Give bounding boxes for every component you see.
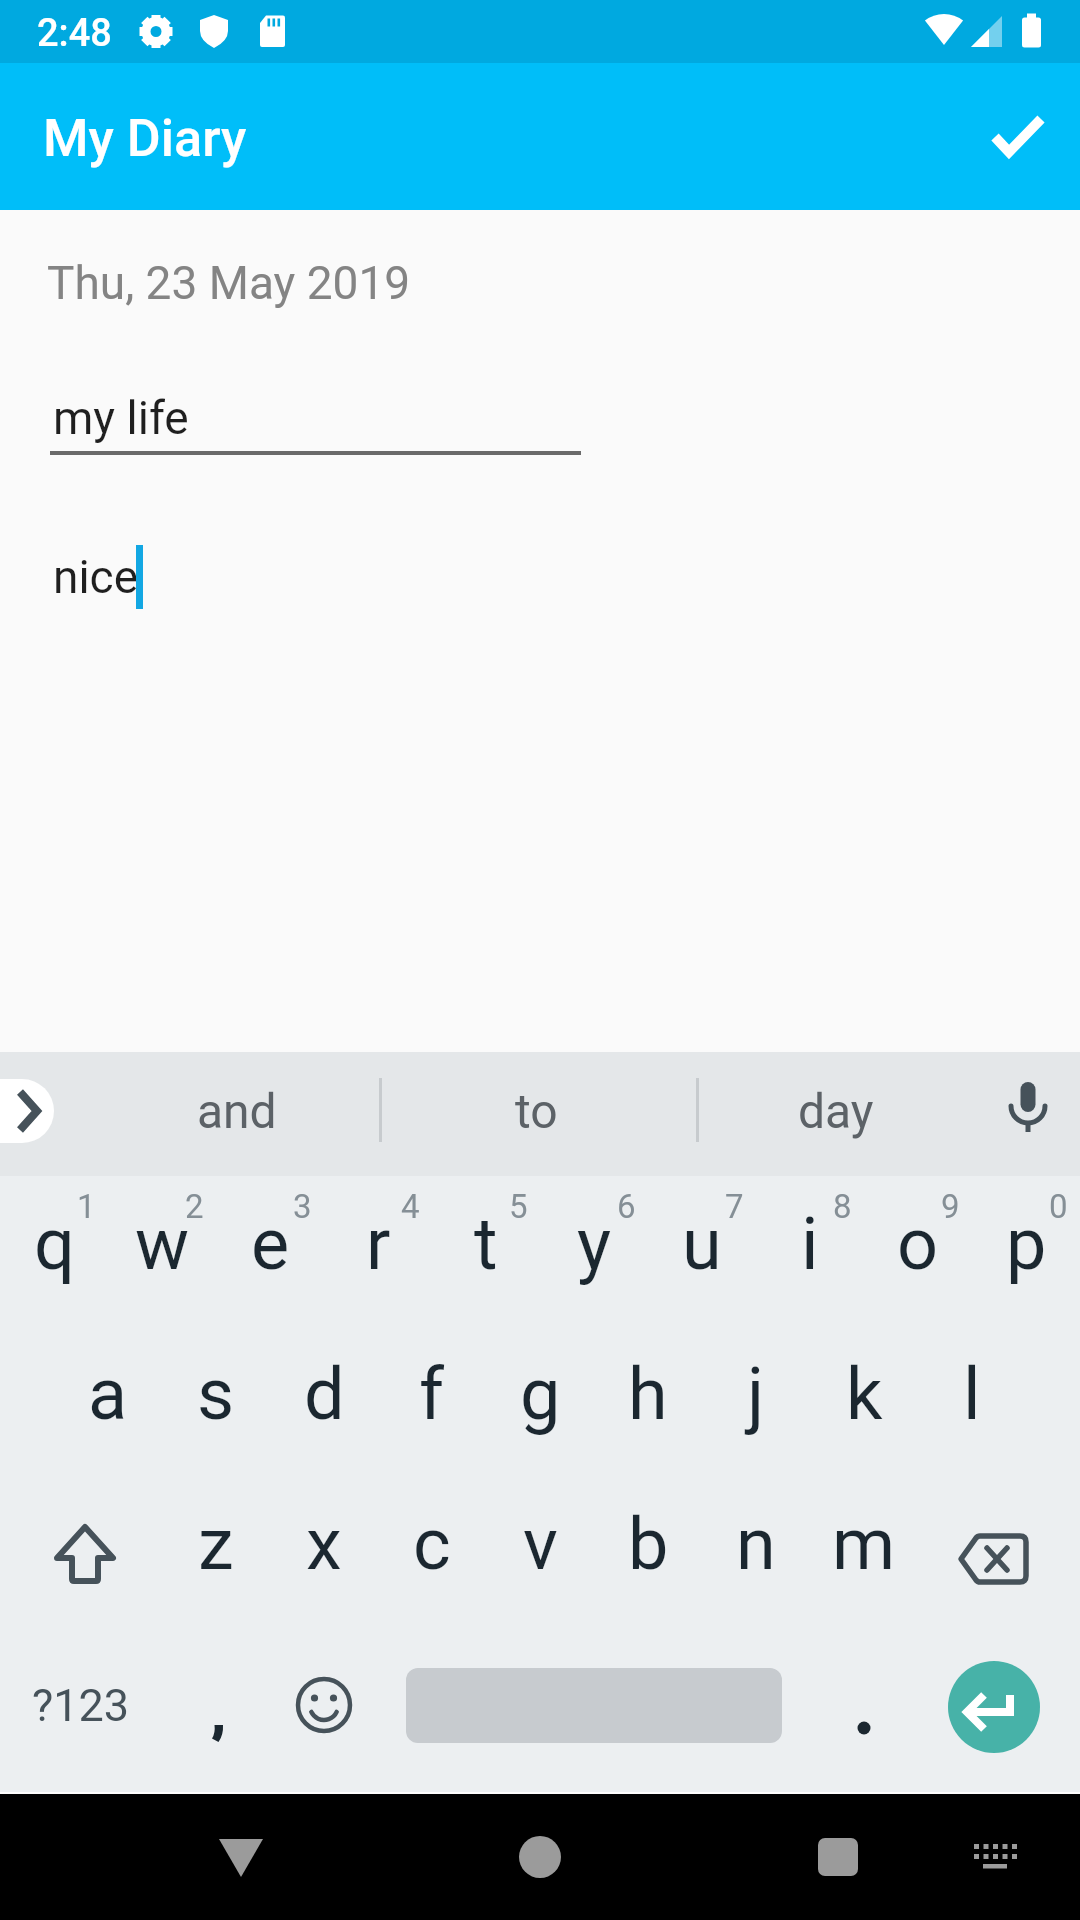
staticText: to xyxy=(515,1083,558,1139)
staticText: y xyxy=(577,1202,612,1286)
staticText: h xyxy=(628,1352,668,1436)
button[interactable]: o xyxy=(864,1180,972,1330)
staticText: e xyxy=(251,1202,290,1286)
button[interactable]: l xyxy=(918,1330,1026,1480)
staticText: Thu, 23 May 2019 xyxy=(47,256,411,310)
staticText: q xyxy=(34,1202,75,1286)
button[interactable]: q xyxy=(0,1180,108,1330)
button[interactable]: m xyxy=(810,1480,918,1630)
staticText: My Diary xyxy=(43,108,247,169)
button[interactable]: u xyxy=(648,1180,756,1330)
staticText: 2:48 xyxy=(37,11,112,56)
staticText: b xyxy=(628,1502,669,1586)
staticText: u xyxy=(682,1202,722,1286)
staticText: 6 xyxy=(617,1187,636,1226)
button[interactable]: z xyxy=(162,1480,270,1630)
button[interactable] xyxy=(996,1078,1060,1142)
button[interactable] xyxy=(918,1630,1080,1780)
button[interactable]: and xyxy=(92,1079,382,1143)
button[interactable] xyxy=(0,1079,54,1143)
staticText: f xyxy=(419,1352,445,1436)
staticText: o xyxy=(897,1202,939,1286)
staticText: w xyxy=(135,1202,190,1286)
staticText: r xyxy=(366,1202,391,1286)
staticText: m xyxy=(832,1502,896,1586)
button[interactable] xyxy=(980,101,1050,171)
staticText: c xyxy=(413,1502,451,1586)
button[interactable]: j xyxy=(702,1330,810,1480)
button[interactable]: d xyxy=(270,1330,378,1480)
staticText: 3 xyxy=(293,1187,312,1226)
button[interactable] xyxy=(378,1630,810,1780)
staticText: day xyxy=(798,1083,874,1139)
button[interactable] xyxy=(955,1819,1035,1895)
button[interactable]: to xyxy=(386,1079,686,1143)
staticText: j xyxy=(747,1352,765,1436)
button[interactable] xyxy=(810,1630,918,1780)
button[interactable]: h xyxy=(594,1330,702,1480)
button[interactable]: a xyxy=(54,1330,162,1480)
button[interactable]: y xyxy=(540,1180,648,1330)
staticText: 2 xyxy=(185,1187,204,1226)
button[interactable]: f xyxy=(378,1330,486,1480)
staticText: d xyxy=(304,1352,345,1436)
staticText: i xyxy=(801,1202,819,1286)
button[interactable] xyxy=(178,1796,304,1918)
button[interactable]: i xyxy=(756,1180,864,1330)
staticText: my life xyxy=(53,391,189,445)
button[interactable] xyxy=(0,1480,162,1630)
button[interactable]: n xyxy=(702,1480,810,1630)
staticText: a xyxy=(88,1352,128,1436)
staticText: p xyxy=(1006,1202,1047,1286)
button[interactable]: nice xyxy=(50,540,550,625)
staticText: l xyxy=(963,1352,981,1436)
staticText: and xyxy=(197,1083,277,1139)
staticText: g xyxy=(520,1352,561,1436)
staticText: nice xyxy=(53,550,139,604)
staticText: 1 xyxy=(77,1187,96,1226)
staticText: k xyxy=(846,1352,883,1436)
staticText: v xyxy=(523,1502,558,1586)
button[interactable]: e xyxy=(216,1180,324,1330)
button[interactable]: p xyxy=(972,1180,1080,1330)
button[interactable]: b xyxy=(594,1480,702,1630)
staticText: 9 xyxy=(941,1187,960,1226)
button[interactable]: ?123 xyxy=(0,1630,162,1780)
button[interactable] xyxy=(477,1796,603,1918)
staticText: 0 xyxy=(1049,1187,1068,1226)
button[interactable] xyxy=(775,1796,901,1918)
staticText: s xyxy=(197,1352,235,1436)
button[interactable] xyxy=(918,1480,1080,1630)
button[interactable]: v xyxy=(486,1480,594,1630)
staticText: x xyxy=(306,1502,342,1586)
button[interactable]: k xyxy=(810,1330,918,1480)
staticText: t xyxy=(474,1202,498,1286)
button[interactable]: my life xyxy=(50,381,581,455)
button[interactable] xyxy=(162,1630,270,1780)
button[interactable]: s xyxy=(162,1330,270,1480)
staticText: n xyxy=(736,1502,776,1586)
button[interactable]: r xyxy=(324,1180,432,1330)
staticText: 7 xyxy=(725,1187,744,1226)
button[interactable]: day xyxy=(686,1079,986,1143)
staticText: 5 xyxy=(509,1187,528,1226)
button[interactable]: w xyxy=(108,1180,216,1330)
staticText: 4 xyxy=(401,1187,420,1226)
button[interactable] xyxy=(270,1630,378,1780)
button[interactable]: c xyxy=(378,1480,486,1630)
staticText: z xyxy=(198,1502,234,1586)
staticText: 8 xyxy=(833,1187,852,1226)
button[interactable]: g xyxy=(486,1330,594,1480)
button[interactable]: t xyxy=(432,1180,540,1330)
staticText: ?123 xyxy=(32,1679,130,1732)
button[interactable]: x xyxy=(270,1480,378,1630)
